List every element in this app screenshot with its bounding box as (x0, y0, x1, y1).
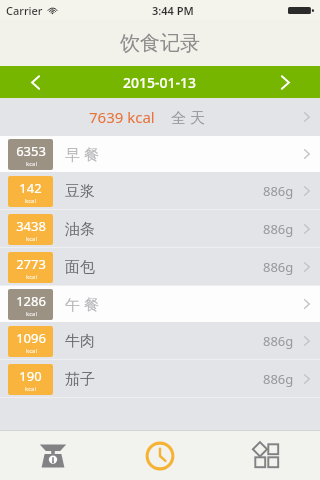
staticText: 油条 (65, 220, 95, 239)
staticText: 豆浆 (65, 182, 95, 201)
staticText: 886g (263, 220, 294, 238)
staticText: 3:44 PM (152, 3, 194, 18)
staticText: 1096 (16, 329, 46, 347)
staticText: kcal (26, 310, 37, 318)
staticText: 886g (263, 332, 294, 350)
button[interactable]: 190 (0, 360, 320, 398)
button[interactable]: Next day (250, 66, 320, 98)
staticText: 1286 (16, 292, 46, 310)
staticText: 面包 (65, 258, 95, 277)
staticText: kcal (26, 160, 37, 168)
staticText: kcal (26, 273, 37, 281)
staticText: 886g (263, 182, 294, 200)
staticText: kcal (25, 385, 36, 393)
button[interactable]: 2773 (0, 248, 320, 286)
button[interactable]: Food scale (0, 431, 106, 480)
button[interactable]: 6353 (0, 136, 320, 172)
button[interactable]: Diet records (106, 431, 213, 480)
staticText: 2015-01-13 (123, 73, 197, 92)
staticText: 饮食记录 (120, 31, 200, 56)
staticText: 牛肉 (65, 332, 95, 351)
button[interactable]: 3438 (0, 210, 320, 248)
staticText: 190 (19, 367, 42, 385)
staticText: 早 餐 (65, 144, 99, 164)
staticText: 午 餐 (65, 294, 99, 314)
staticText: kcal (26, 347, 37, 355)
button[interactable]: 7639 kcal (0, 98, 320, 136)
staticText: 7639 kcal (89, 107, 155, 127)
staticText: 6353 (16, 142, 46, 160)
staticText: 茄子 (65, 370, 95, 389)
button[interactable]: 1096 (0, 322, 320, 360)
button[interactable]: 142 (0, 172, 320, 210)
staticText: 886g (263, 258, 294, 276)
staticText: 全 天 (171, 107, 205, 127)
staticText: 3438 (16, 217, 46, 235)
button[interactable]: Previous day (0, 66, 70, 98)
staticText: 886g (263, 370, 294, 388)
staticText: 142 (19, 179, 42, 197)
staticText: Carrier (6, 3, 43, 18)
staticText: kcal (25, 197, 36, 205)
button[interactable]: More (213, 431, 320, 480)
button[interactable]: 1286 (0, 286, 320, 322)
staticText: 2773 (16, 255, 46, 273)
staticText: kcal (26, 235, 37, 243)
